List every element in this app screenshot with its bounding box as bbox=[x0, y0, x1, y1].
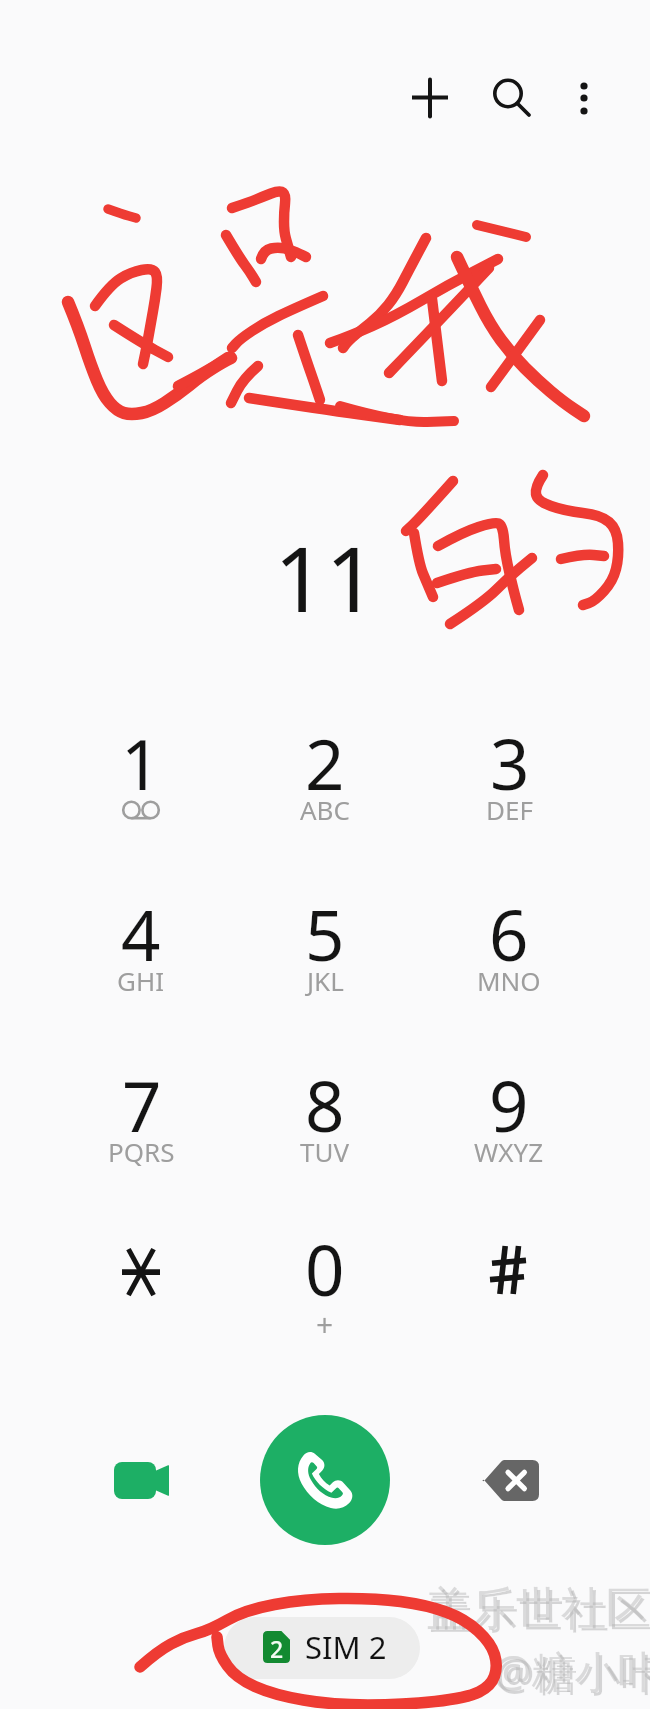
button[interactable]: 8 bbox=[233, 1058, 417, 1222]
staticText: 2 bbox=[305, 716, 345, 810]
button[interactable]: 4 bbox=[49, 887, 233, 1058]
staticText: 1 bbox=[121, 716, 161, 810]
staticText: @糖小咔 bbox=[493, 1641, 650, 1700]
staticText: + bbox=[316, 1304, 334, 1345]
staticText: 3 bbox=[490, 716, 530, 810]
staticText: 0 bbox=[305, 1222, 345, 1316]
staticText: 11 bbox=[274, 516, 377, 616]
staticText: TUV bbox=[300, 1134, 350, 1169]
staticText: MNO bbox=[477, 963, 541, 998]
button[interactable]: 2 bbox=[233, 716, 417, 887]
button[interactable]: Backspace bbox=[475, 1445, 545, 1515]
staticText: 盖乐世社区 bbox=[426, 1581, 650, 1638]
staticText: 9 bbox=[489, 1058, 529, 1152]
staticText: PQRS bbox=[108, 1134, 175, 1169]
staticText: JKL bbox=[307, 963, 344, 998]
button[interactable] bbox=[417, 1222, 601, 1393]
staticText: 6 bbox=[489, 887, 529, 981]
staticText: 5 bbox=[305, 887, 345, 981]
button[interactable]: 7 bbox=[49, 1058, 233, 1222]
button[interactable]: Video call bbox=[106, 1445, 176, 1515]
button[interactable]: Search bbox=[476, 64, 548, 136]
staticText: ABC bbox=[300, 792, 350, 827]
staticText: GHI bbox=[117, 963, 165, 998]
staticText: WXYZ bbox=[474, 1134, 544, 1169]
staticText: SIM 2 bbox=[305, 1626, 387, 1668]
button[interactable]: 3 bbox=[417, 716, 601, 887]
staticText: 7 bbox=[122, 1058, 162, 1152]
button[interactable]: More options bbox=[548, 62, 620, 134]
button[interactable]: 9 bbox=[417, 1058, 601, 1222]
button[interactable]: Add contact bbox=[394, 62, 466, 134]
button[interactable] bbox=[49, 1222, 233, 1393]
staticText: 8 bbox=[305, 1058, 345, 1152]
button[interactable]: 1 bbox=[49, 716, 233, 887]
button[interactable]: Call bbox=[260, 1415, 390, 1545]
staticText: 盖乐世社区 bbox=[429, 1584, 650, 1641]
button[interactable]: 6 bbox=[417, 887, 601, 1058]
button[interactable]: 0 bbox=[233, 1222, 417, 1393]
button[interactable]: 5 bbox=[233, 887, 417, 1058]
staticText: 4 bbox=[121, 887, 161, 981]
staticText: DEF bbox=[486, 792, 533, 827]
staticText: @糖小咔 bbox=[496, 1644, 650, 1703]
staticText: 2 bbox=[270, 1633, 284, 1664]
button[interactable]: 2 bbox=[224, 1617, 420, 1679]
